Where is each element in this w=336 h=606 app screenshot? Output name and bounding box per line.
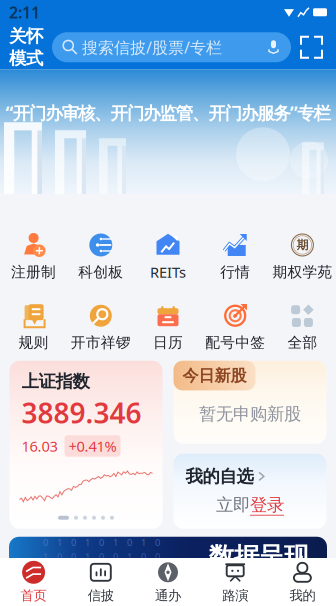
button[interactable]: 今日新股 [173,361,326,444]
staticText: REITs [150,262,186,282]
button[interactable]: 扫一扫 [299,37,324,58]
button[interactable]: 通办 [134,558,202,606]
staticText: 注册制 [11,263,56,281]
staticText: 1 [155,565,160,577]
staticText: 日历 [153,334,183,352]
staticText: 暂无申购新股 [199,403,301,425]
button[interactable]: 全部 [269,304,336,352]
staticText: 我的 [289,587,315,604]
button[interactable]: 路演 [202,558,269,606]
button[interactable]: 搜索信披/股票/专栏 [52,32,291,62]
button[interactable]: 关怀 [8,25,44,69]
button[interactable]: 开市祥锣 [67,304,134,352]
staticText: 0 [57,550,62,563]
staticText: 期权学苑 [272,263,332,281]
staticText: “开门办审核、开门办监管、开门办服务”专栏 [5,101,330,124]
button[interactable]: 行情 [202,233,269,281]
staticText: 0 [99,550,104,563]
button[interactable]: REITs [134,232,202,282]
staticText: 16.03 [21,436,57,456]
button[interactable]: 科创板 [67,233,134,281]
staticText: 0 [85,565,90,577]
staticText: 1 [85,536,90,549]
button[interactable]: 注册制 [0,233,67,281]
button[interactable]: 配号中签 [202,304,269,352]
button[interactable]: 日历 [134,304,202,352]
staticText: 数据呈现 [209,541,309,572]
staticText: 0 [99,536,104,549]
button[interactable]: 我的 [269,558,336,606]
staticText: 登录 [250,494,284,516]
staticText: 1 [127,550,132,563]
button[interactable]: 期 [269,233,336,281]
staticText: 立即 [216,494,250,516]
staticText: 1 [141,536,146,549]
staticText: +0.41% [68,436,116,456]
staticText: 0 [71,550,76,563]
staticText: 路演 [222,587,248,604]
staticText: 期 [296,238,308,252]
staticText: 今日新股 [182,366,246,385]
staticText: 1 [57,536,62,549]
staticText: 0 [127,536,132,549]
staticText: 1 [113,536,118,549]
staticText: 关怀 [9,25,43,47]
staticText: 0 [43,536,48,549]
staticText: 0 [155,550,160,563]
staticText: 0 [155,536,160,549]
staticText: 0 [141,550,146,563]
button[interactable]: 规则 [0,304,67,352]
staticText: 规则 [19,334,49,352]
staticText: 1 [43,565,48,577]
staticText: 模式 [9,48,43,69]
staticText: 上证指数 [21,371,89,392]
staticText: 搜索信披/股票/专栏 [82,37,222,58]
staticText: 3889.346 [21,394,141,431]
button[interactable]: 上证指数 [9,361,162,529]
staticText: 1 [43,550,48,563]
staticText: 通办 [155,587,181,604]
staticText: 开市祥锣 [71,334,131,352]
button[interactable]: 我的自选 [173,454,326,529]
staticText: 1 [85,550,90,563]
staticText: 科创板 [78,263,123,281]
button[interactable]: 首页 [0,558,67,606]
staticText: 0 [113,550,118,563]
staticText: 1 [99,565,104,577]
staticText: 0 [71,536,76,549]
staticText: 信披 [88,587,114,604]
button[interactable]: 信披 [67,558,134,606]
staticText: 我的自选 [185,466,253,487]
staticText: 行情 [220,263,250,281]
staticText: 全部 [287,334,317,352]
staticText: 首页 [21,587,47,604]
button[interactable]: 0 [0,537,336,577]
button[interactable]: “开门办审核、开门办监管、开门办服务”专栏 [0,69,336,194]
staticText: 2:11 [9,2,40,23]
staticText: 配号中签 [205,334,265,352]
